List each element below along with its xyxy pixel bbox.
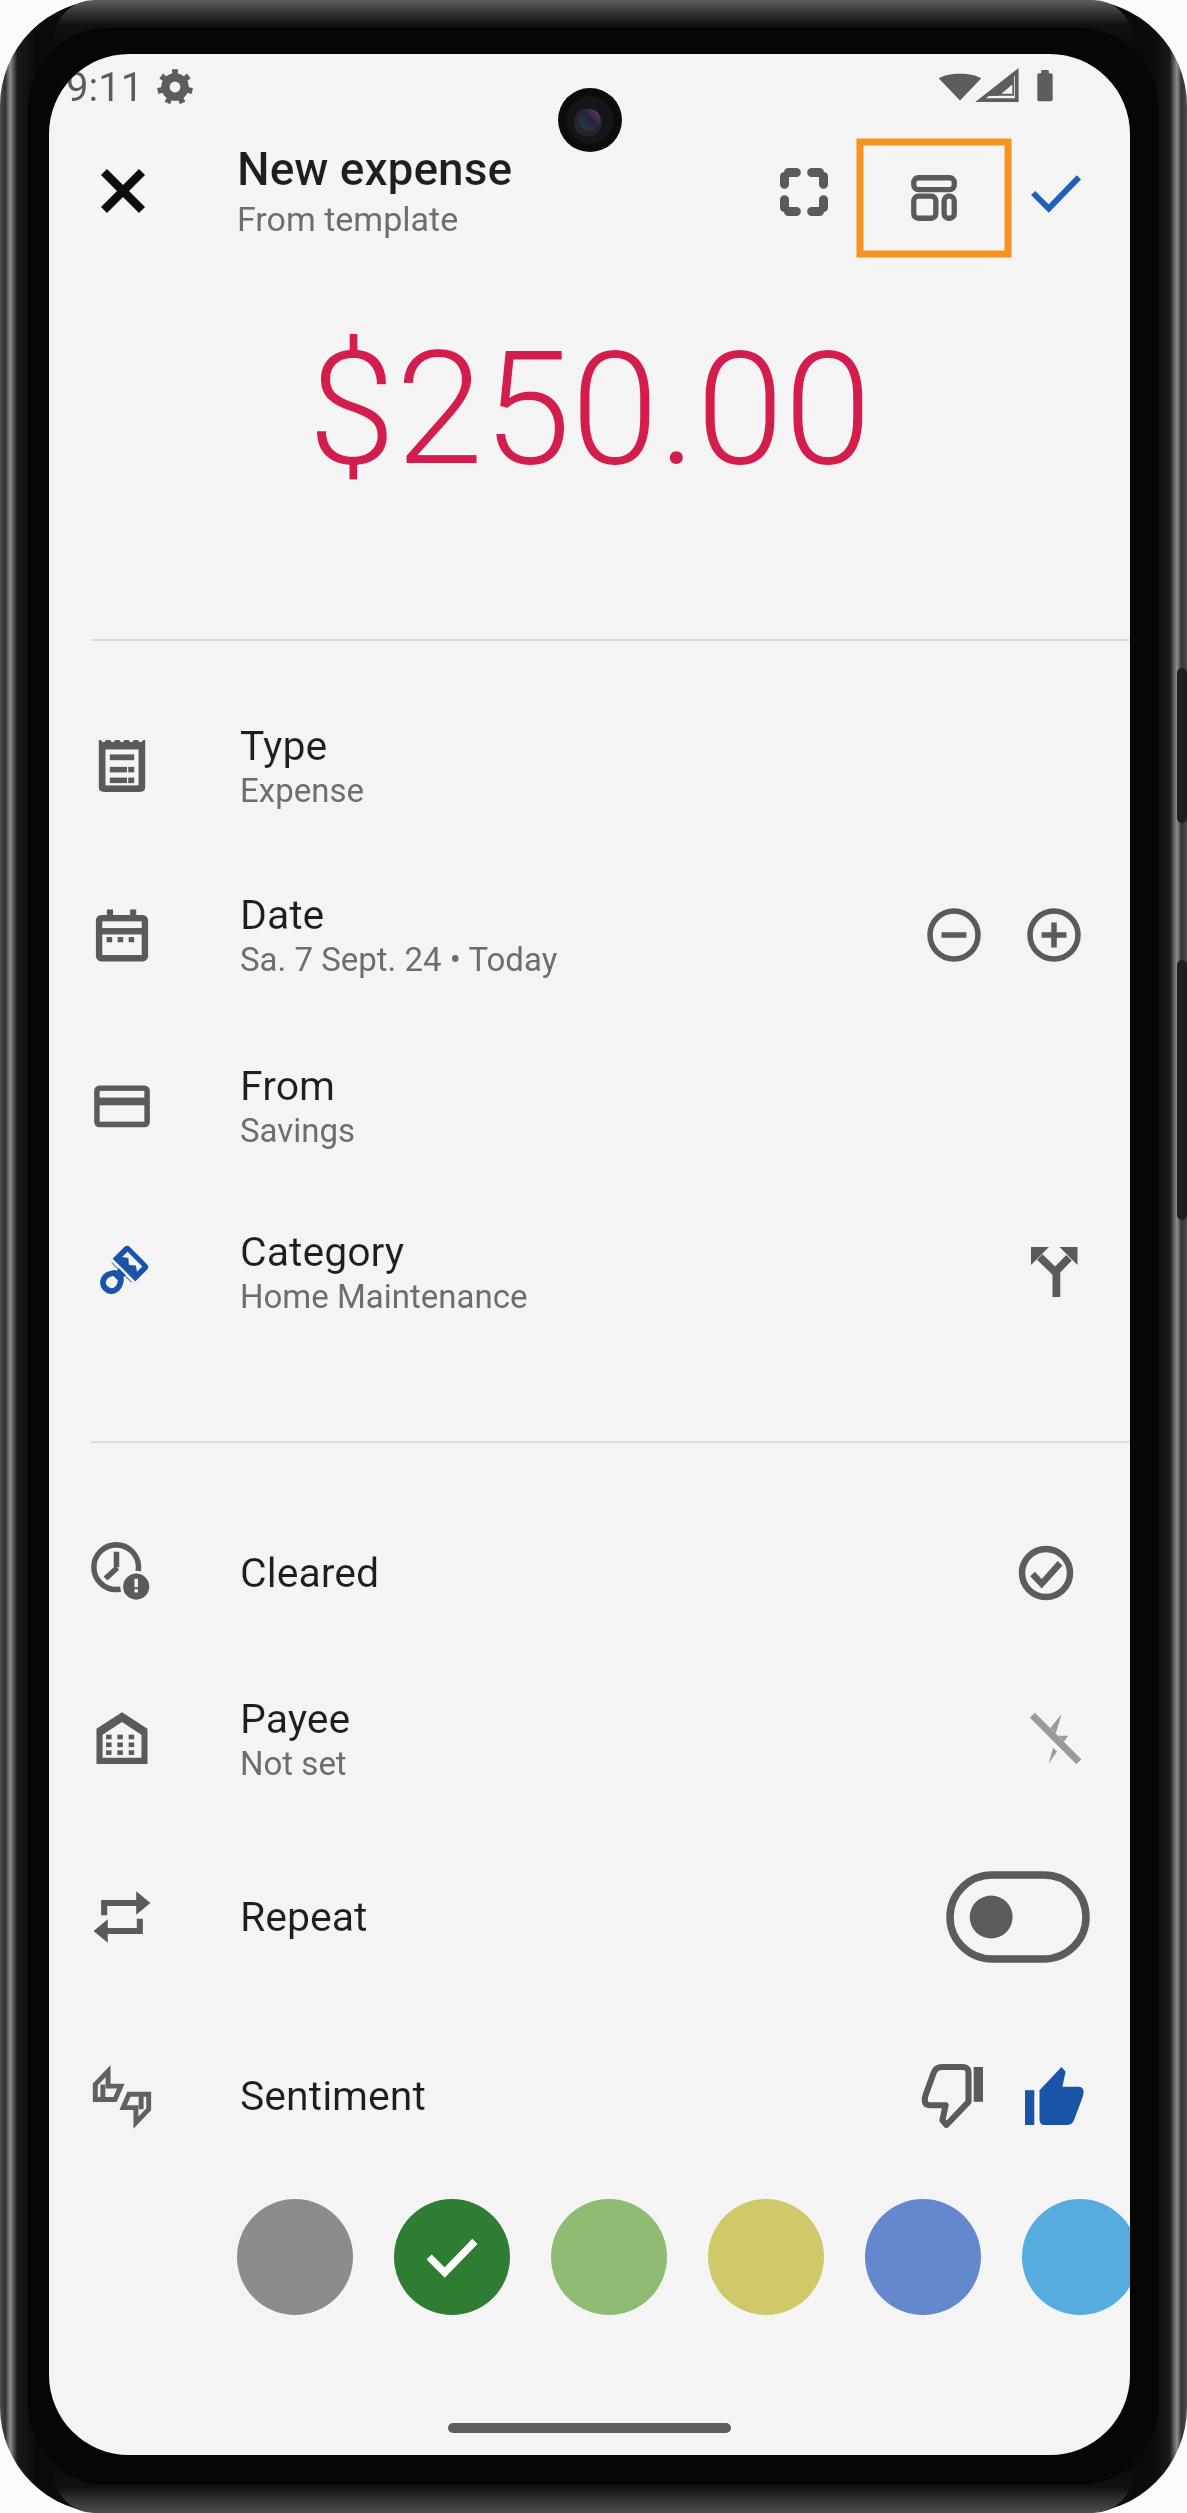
staticText: Home Maintenance [240,1277,528,1316]
staticText: Date [240,891,325,939]
staticText: Type [240,722,328,770]
button[interactable]: Colour 3 [551,2199,667,2315]
button[interactable]: Category [49,1206,1130,1338]
button[interactable]: Repeat toggle [950,1875,1086,1959]
button[interactable]: Split transaction [1004,1222,1104,1322]
button[interactable]: Save [1011,148,1101,238]
button[interactable]: Thumbs up [1004,2046,1104,2146]
button[interactable]: Colour 2 [394,2199,510,2315]
staticText: New expense [237,142,513,196]
button[interactable]: Sentiment [49,2030,1130,2162]
button[interactable]: Layout toggle [860,142,1008,254]
staticText: From [240,1062,335,1110]
staticText: From template [237,199,459,239]
staticText: Cleared [240,1549,380,1597]
staticText: Savings [240,1111,356,1150]
button[interactable]: Repeat [49,1851,1130,1983]
staticText: $250.00 [308,316,872,501]
staticText: Repeat [240,1893,368,1941]
staticText: 9:11 [66,64,144,111]
button[interactable]: Colour 6 [1022,2199,1130,2315]
button[interactable]: Close [73,141,173,241]
button[interactable]: Next day [1004,885,1104,985]
button[interactable]: Colour 5 [865,2199,981,2315]
button[interactable]: Colour 1 [237,2199,353,2315]
button[interactable]: Thumbs down [904,2046,1004,2146]
button[interactable]: Previous day [904,885,1004,985]
staticText: Payee [240,1695,351,1743]
button[interactable]: Date [49,869,1130,1001]
button[interactable]: Auto fill off [1004,1689,1104,1789]
staticText: Expense [240,771,364,810]
button[interactable]: Colour 4 [708,2199,824,2315]
button[interactable]: Cleared [49,1507,1130,1639]
button[interactable]: Payee [49,1673,1130,1805]
button[interactable]: Fullscreen [759,147,849,237]
staticText: Not set [240,1744,347,1783]
button[interactable]: Cleared [996,1523,1096,1623]
staticText: Category [240,1228,405,1276]
staticText: Sentiment [240,2072,426,2120]
button[interactable]: Type [49,700,1130,832]
button[interactable]: From [49,1040,1130,1172]
staticText: Sa. 7 Sept. 24 • Today [240,940,558,979]
